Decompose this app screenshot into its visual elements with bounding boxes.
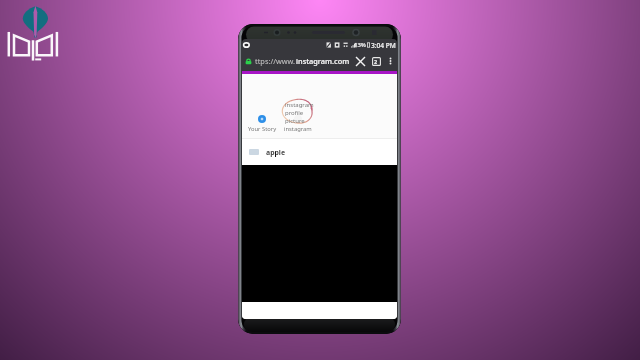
staticText: picture (285, 117, 305, 125)
staticText: ttps://www. (255, 56, 296, 66)
staticText: 13% (354, 41, 366, 49)
button[interactable]: apple (249, 139, 397, 165)
staticText: instagram (284, 125, 312, 133)
staticText: 2 (374, 58, 378, 65)
button[interactable]: Open tabs (371, 51, 381, 71)
staticText: profile (285, 109, 304, 117)
button[interactable]: More options (386, 51, 394, 71)
staticText: instagram (285, 101, 314, 109)
staticText: Your Story (248, 125, 277, 133)
button[interactable]: instagram (283, 115, 313, 133)
button[interactable]: Your Story (247, 115, 277, 133)
staticText: instagram.com (296, 56, 350, 66)
button[interactable]: Stop loading (354, 51, 367, 71)
staticText: 3:04 PM (371, 41, 396, 50)
staticText: apple (266, 148, 286, 157)
